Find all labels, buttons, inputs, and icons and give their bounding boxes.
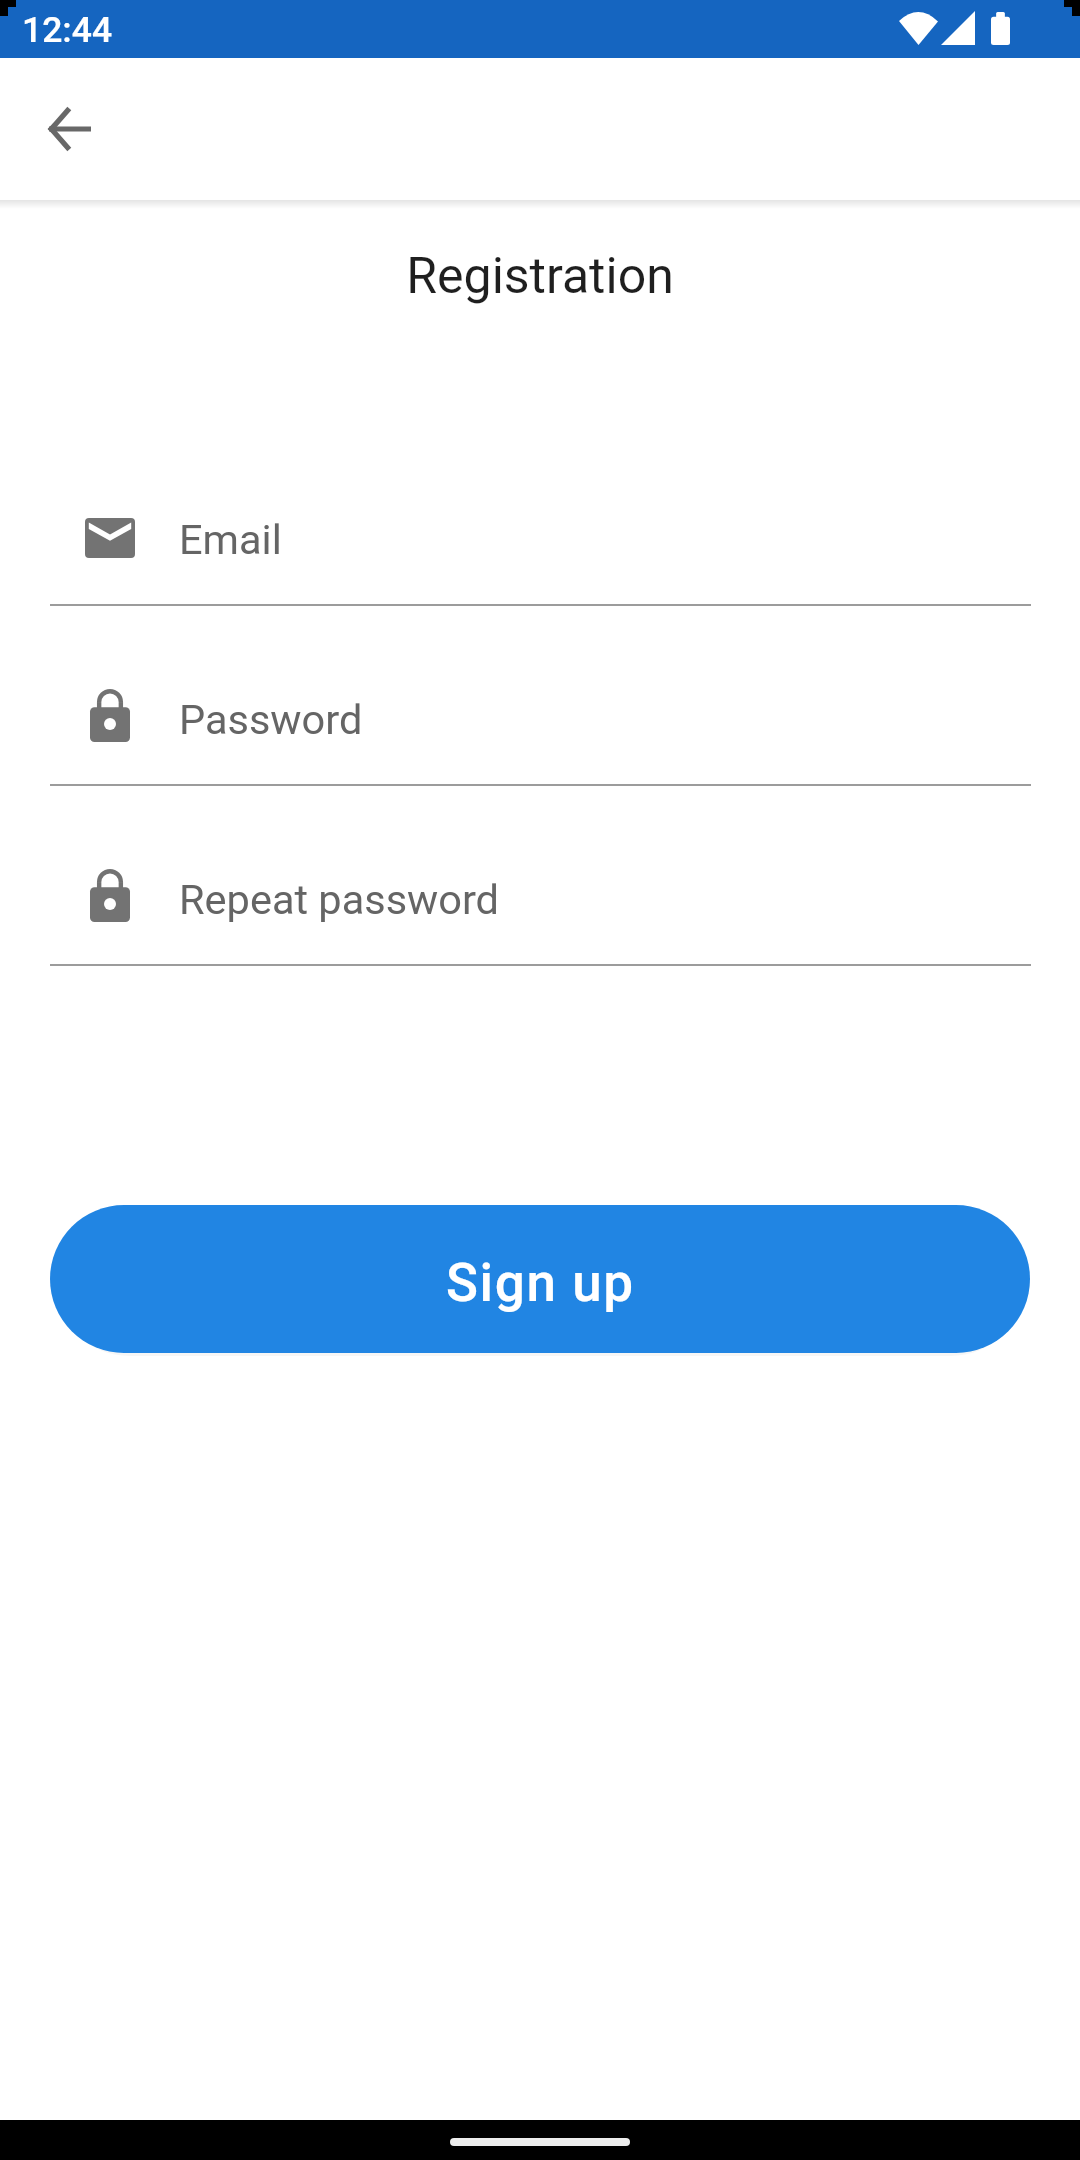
staticText: Registration — [0, 247, 1080, 306]
button[interactable]: Navigate back — [31, 89, 111, 169]
button[interactable]: Repeat password — [0, 847, 1080, 968]
button[interactable]: Email — [0, 487, 1080, 608]
staticText: Password — [179, 695, 363, 744]
button[interactable]: Password — [0, 667, 1080, 788]
button[interactable]: Sign up — [50, 1205, 1030, 1353]
staticText: Sign up — [446, 1252, 635, 1314]
staticText: Repeat password — [179, 875, 499, 924]
staticText: Email — [179, 515, 282, 564]
staticText: 12:44 — [22, 9, 113, 51]
